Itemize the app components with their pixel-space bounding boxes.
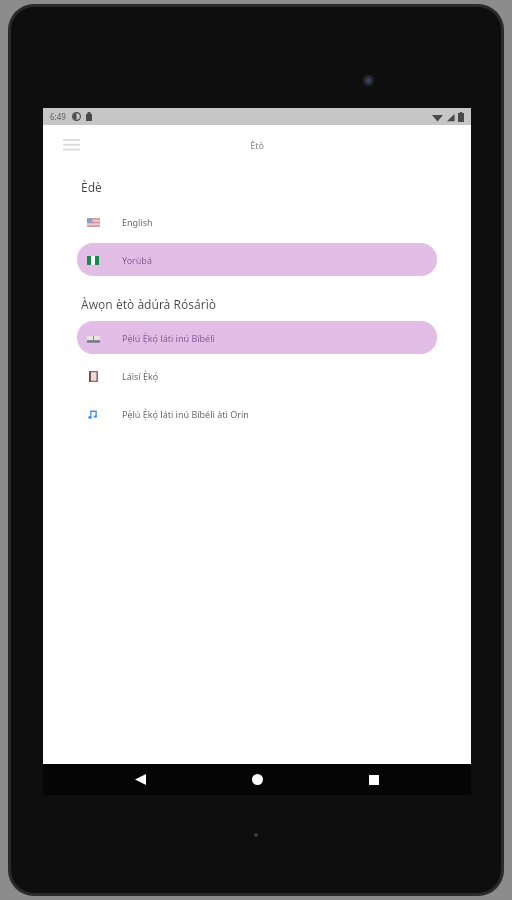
staticText: Ètò: [250, 139, 264, 151]
staticText: Àwọn ètò àdúrà Rósárìò: [81, 296, 216, 312]
button[interactable]: Yorùbá: [77, 243, 437, 276]
button[interactable]: Láìsí Ẹ̀kọ́: [77, 359, 437, 392]
staticText: Èdè: [81, 179, 102, 195]
staticText: 6:49: [50, 111, 66, 122]
button[interactable]: English: [77, 205, 437, 238]
button[interactable]: Home: [237, 764, 277, 795]
staticText: Pẹ̀lú Ẹ̀kọ́ láti inú Bíbélì àti Orin: [122, 408, 249, 420]
button[interactable]: Open navigation menu: [55, 129, 87, 161]
staticText: Pẹ̀lú Ẹ̀kọ́ láti inú Bíbélì: [122, 332, 215, 344]
staticText: Yorùbá: [122, 254, 152, 266]
button[interactable]: Pẹ̀lú Ẹ̀kọ́ láti inú Bíbélì: [77, 321, 437, 354]
button[interactable]: Recent apps: [354, 764, 394, 795]
button[interactable]: Pẹ̀lú Ẹ̀kọ́ láti inú Bíbélì àti Orin: [77, 397, 437, 430]
staticText: English: [122, 216, 153, 228]
staticText: Láìsí Ẹ̀kọ́: [122, 370, 159, 382]
button[interactable]: Back: [120, 764, 160, 795]
